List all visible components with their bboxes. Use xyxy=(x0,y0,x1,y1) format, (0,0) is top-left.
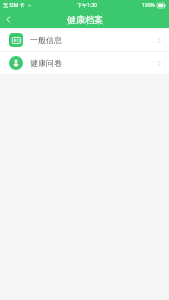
button[interactable]: 返回 xyxy=(0,11,17,28)
staticText: 健康问卷 xyxy=(30,58,62,68)
staticText: 一般信息 xyxy=(30,35,62,45)
staticText: 无 SIM 卡 xyxy=(3,2,25,9)
staticText: 健康档案 xyxy=(67,14,103,25)
button[interactable]: 健康问卷 xyxy=(0,52,169,74)
staticText: 下午1:30 xyxy=(77,2,97,9)
staticText: 100% xyxy=(142,2,155,9)
button[interactable]: 一般信息 xyxy=(0,29,169,51)
